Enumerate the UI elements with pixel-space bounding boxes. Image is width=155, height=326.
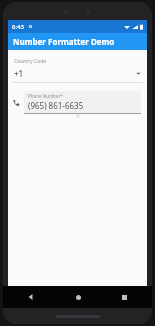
button[interactable]: Country Code: [8, 58, 147, 82]
button[interactable]: Phone Number*: [24, 91, 141, 114]
button[interactable]: Back: [23, 289, 39, 305]
staticText: 6:43: [12, 23, 24, 31]
other: Phone: [12, 98, 21, 107]
staticText: +1: [14, 68, 24, 79]
staticText: Phone Number*: [28, 93, 63, 99]
button[interactable]: Recent apps: [116, 289, 132, 305]
button[interactable]: Number Formatter Demo: [8, 33, 147, 50]
button[interactable]: Home: [70, 289, 86, 305]
other: Expand country code: [136, 71, 141, 76]
staticText: (965) 861-6635: [28, 100, 84, 111]
staticText: Country Code: [14, 58, 47, 65]
staticText: Number Formatter Demo: [13, 36, 115, 47]
